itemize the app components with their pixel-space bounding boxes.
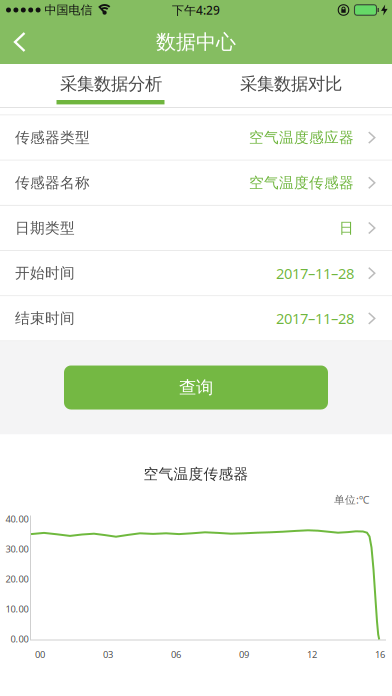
button[interactable]: 结束时间 <box>0 296 392 340</box>
staticText: 采集数据分析 <box>60 73 162 95</box>
staticText: 10.00 <box>5 603 28 615</box>
staticText: 日期类型 <box>15 219 75 237</box>
staticText: 空气温度传感器 <box>249 174 354 192</box>
staticText: 2017–11–28 <box>276 263 354 283</box>
staticText: 20.00 <box>5 573 28 585</box>
button[interactable]: 返回 <box>0 20 26 64</box>
button[interactable]: 传感器类型 <box>0 115 392 160</box>
staticText: 查询 <box>179 377 213 398</box>
staticText: 0.00 <box>10 633 28 645</box>
staticText: 下午4:29 <box>172 2 220 18</box>
staticText: 00 <box>35 648 45 661</box>
button[interactable]: 采集数据分析 <box>0 64 196 107</box>
staticText: 09 <box>239 648 249 661</box>
staticText: 03 <box>103 648 113 661</box>
staticText: 结束时间 <box>15 309 75 327</box>
staticText: 中国电信 <box>45 3 93 17</box>
staticText: 单位:℃ <box>334 492 370 507</box>
staticText: 12 <box>307 648 317 661</box>
button[interactable]: 查询 <box>64 365 328 409</box>
staticText: 采集数据对比 <box>240 73 342 95</box>
staticText: 30.00 <box>5 543 28 555</box>
staticText: 40.00 <box>5 513 28 525</box>
staticText: 开始时间 <box>15 264 75 282</box>
staticText: 空气温度感应器 <box>249 129 354 147</box>
staticText: 日 <box>339 219 354 237</box>
staticText: 传感器类型 <box>15 129 90 147</box>
button[interactable]: 开始时间 <box>0 251 392 295</box>
button[interactable]: 日期类型 <box>0 206 392 250</box>
staticText: 传感器名称 <box>15 174 90 192</box>
staticText: 16 <box>375 648 385 661</box>
button[interactable]: 采集数据对比 <box>196 64 392 107</box>
staticText: 2017–11–28 <box>276 309 354 328</box>
button[interactable]: 传感器名称 <box>0 161 392 205</box>
staticText: 06 <box>171 648 181 661</box>
staticText: 空气温度传感器 <box>143 465 248 483</box>
staticText: 数据中心 <box>156 30 236 54</box>
